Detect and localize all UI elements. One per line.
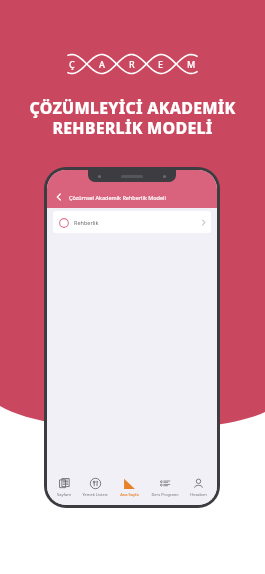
staticText: R xyxy=(129,58,135,70)
button[interactable]: Yemek Listesi xyxy=(80,475,110,499)
button[interactable]: Rehberlik xyxy=(53,211,211,233)
staticText: Yemek Listesi xyxy=(82,492,108,497)
staticText: REHBERLİK MODELİ xyxy=(52,117,213,139)
staticText: Ç xyxy=(69,58,75,70)
button[interactable]: Ders Programı xyxy=(149,475,181,499)
staticText: E xyxy=(158,58,164,70)
button[interactable]: Hesabım xyxy=(188,475,209,499)
button[interactable]: Back xyxy=(52,190,66,204)
staticText: M xyxy=(187,58,196,70)
staticText: Sayfam xyxy=(57,492,71,497)
staticText: ÇÖZÜMLEYİCİ AKADEMİK xyxy=(29,97,236,119)
button[interactable]: Sayfam xyxy=(55,475,73,499)
staticText: Ana Sayfa xyxy=(120,492,139,497)
staticText: Çözümsel Akademik Rehberlik Modeli xyxy=(69,194,166,201)
staticText: Rehberlik xyxy=(74,219,99,226)
staticText: Ders Programı xyxy=(151,492,179,497)
staticText: A xyxy=(99,58,105,70)
staticText: Hesabım xyxy=(190,492,207,497)
button[interactable]: Ana Sayfa xyxy=(118,475,141,499)
